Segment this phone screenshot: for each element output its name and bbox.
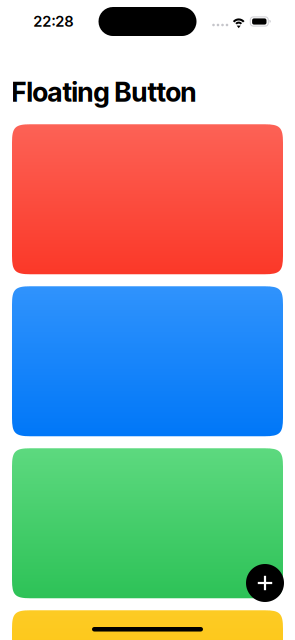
button[interactable]: Add [246, 564, 284, 602]
staticText: 22:28 [33, 13, 73, 30]
staticText: Floating Button [11, 76, 196, 108]
